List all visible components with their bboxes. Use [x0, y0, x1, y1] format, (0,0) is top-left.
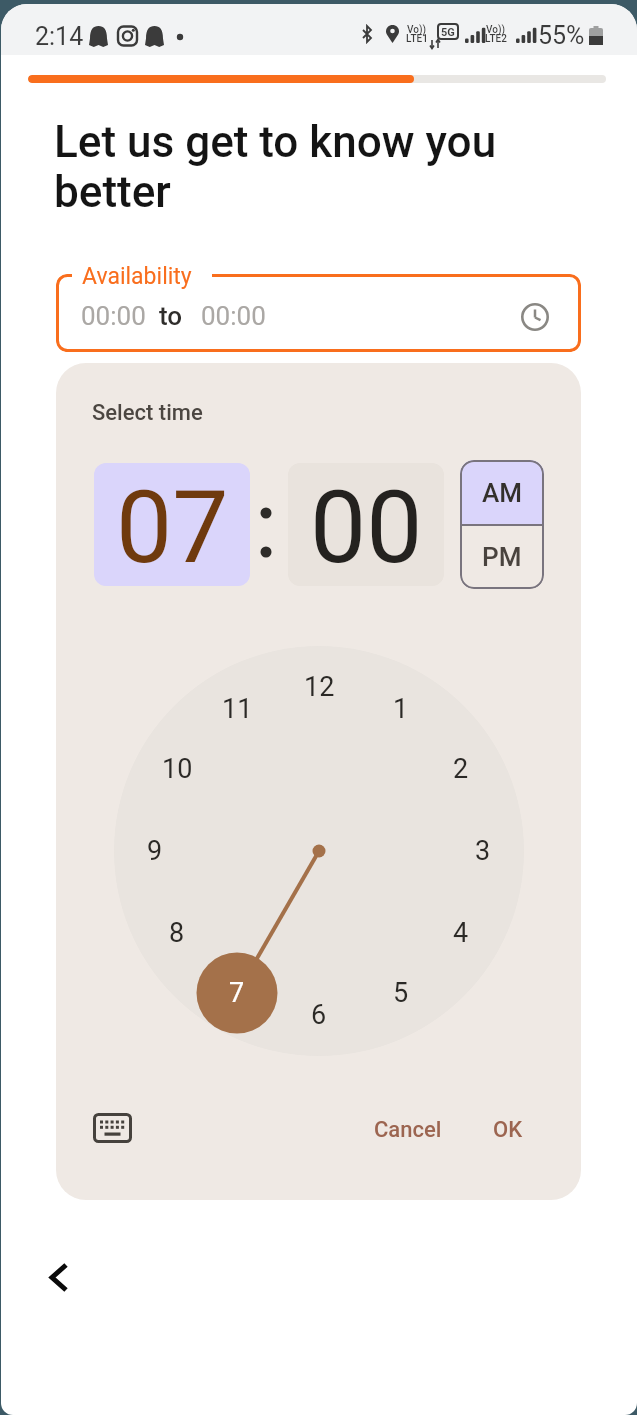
button[interactable] [82, 1101, 142, 1155]
button[interactable]: 7 [215, 971, 259, 1015]
staticText: PM [482, 542, 522, 572]
button[interactable]: Cancel [351, 1102, 464, 1158]
staticText: Select time [92, 400, 203, 426]
staticText: Cancel [374, 1117, 442, 1143]
button[interactable]: 2 [439, 747, 483, 791]
button[interactable]: 3 [461, 829, 505, 873]
staticText: 1 [393, 693, 409, 725]
staticText: 4 [453, 917, 469, 949]
button[interactable]: 4 [439, 911, 483, 955]
button[interactable]: AM [460, 460, 544, 525]
staticText: 12 [304, 671, 335, 703]
staticText: 3 [475, 835, 491, 867]
staticText: 8 [169, 917, 185, 949]
button[interactable]: 10 [155, 747, 199, 791]
staticText: Let us get to know you better [54, 116, 497, 218]
staticText: 10 [162, 753, 193, 785]
staticText: 9 [147, 835, 163, 867]
staticText: 5G [441, 26, 455, 39]
staticText: 55% [538, 21, 585, 50]
staticText: 00:00 [201, 301, 266, 331]
button[interactable]: 6 [297, 993, 341, 1037]
button[interactable]: 9 [133, 829, 177, 873]
button[interactable] [34, 1251, 82, 1303]
button[interactable]: PM [460, 525, 544, 589]
button[interactable]: 00:00 [56, 274, 581, 352]
button[interactable]: 8 [155, 911, 199, 955]
staticText: 5 [393, 977, 409, 1009]
button[interactable]: 07 [94, 463, 250, 586]
staticText: Vo)) [407, 24, 427, 36]
button[interactable]: 1 [379, 687, 423, 731]
button[interactable]: 12 [297, 665, 341, 709]
button[interactable]: 11 [215, 687, 259, 731]
button[interactable]: 5 [379, 971, 423, 1015]
staticText: AM [482, 478, 523, 508]
staticText: to [159, 301, 183, 331]
staticText: OK [493, 1117, 523, 1143]
staticText: LTE2 [485, 33, 507, 45]
staticText: Vo)) [486, 24, 506, 36]
staticText: Availability [82, 263, 192, 290]
button[interactable]: 00 [288, 463, 444, 586]
button[interactable]: OK [468, 1102, 548, 1158]
staticText: LTE1 [406, 33, 428, 45]
staticText: 00 [310, 469, 423, 586]
staticText: 11 [222, 693, 253, 725]
staticText: 2 [453, 753, 469, 785]
staticText: 00:00 [81, 301, 146, 331]
staticText: 6 [311, 999, 327, 1031]
staticText: 7 [229, 977, 245, 1009]
staticText: 07 [116, 469, 229, 586]
staticText: 2:14 [35, 22, 84, 51]
